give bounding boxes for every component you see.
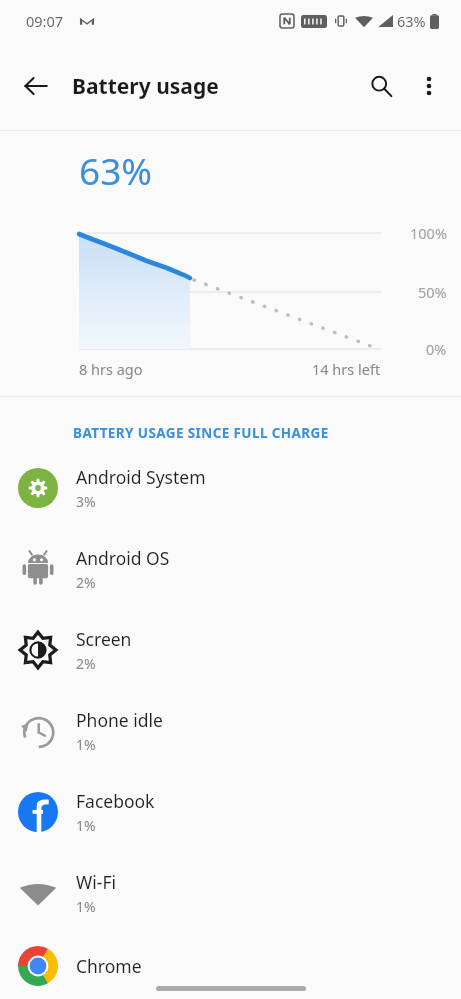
staticText: Phone idle [76, 708, 163, 732]
staticText: 3% [76, 492, 96, 511]
staticText: Battery usage [72, 72, 219, 101]
staticText: 8 hrs ago [79, 359, 143, 379]
staticText: 1% [76, 897, 96, 916]
button[interactable]: More options [405, 62, 453, 110]
button[interactable]: Facebook [0, 771, 461, 852]
button[interactable]: Screen [0, 609, 461, 690]
staticText: Wi-Fi [76, 870, 117, 894]
button[interactable]: Android System [0, 447, 461, 528]
button[interactable]: Phone idle [0, 690, 461, 771]
staticText: 09:07 [26, 11, 64, 31]
staticText: 0% [426, 339, 447, 359]
staticText: 63% [79, 145, 153, 195]
staticText: Screen [76, 627, 132, 651]
button[interactable]: Chrome [0, 933, 461, 999]
staticText: 50% [418, 282, 447, 302]
staticText: 2% [76, 573, 96, 592]
staticText: Android OS [76, 546, 170, 570]
button[interactable]: BATTERY USAGE SINCE FULL CHARGE [0, 419, 461, 447]
button[interactable]: Back [12, 62, 60, 110]
staticText: Facebook [76, 789, 155, 813]
staticText: Chrome [76, 954, 142, 978]
button[interactable]: Wi-Fi [0, 852, 461, 933]
staticText: 1% [76, 816, 96, 835]
staticText: 63% [397, 11, 426, 31]
button[interactable]: Android OS [0, 528, 461, 609]
staticText: 100% [410, 223, 447, 243]
button[interactable]: Search [357, 62, 405, 110]
staticText: Android System [76, 465, 206, 489]
staticText: BATTERY USAGE SINCE FULL CHARGE [73, 424, 329, 442]
staticText: 14 hrs left [312, 359, 381, 379]
staticText: 1% [76, 735, 96, 754]
staticText: 2% [76, 654, 96, 673]
